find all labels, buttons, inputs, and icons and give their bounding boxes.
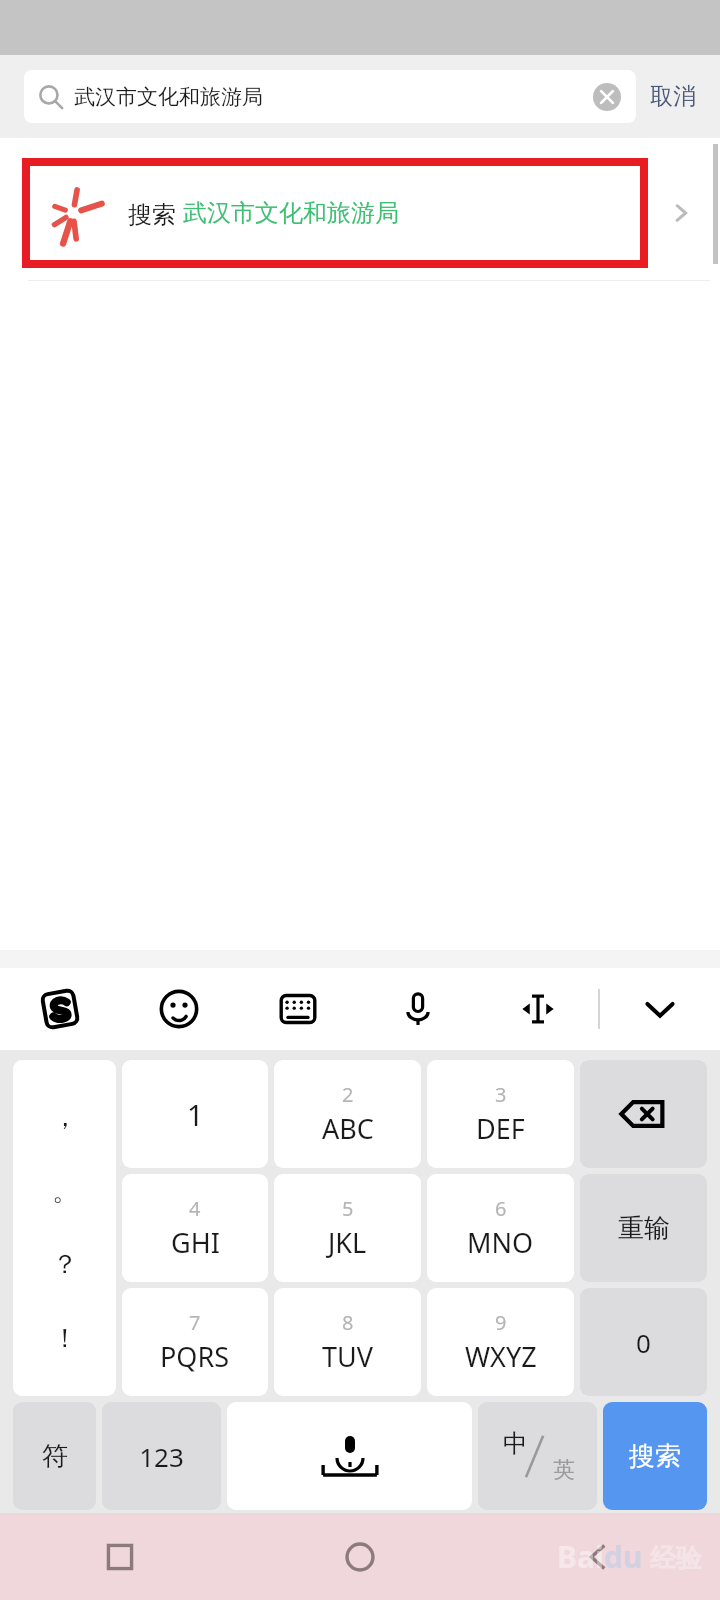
staticText: 5 — [342, 1195, 354, 1222]
staticText: DEF — [476, 1110, 525, 1147]
staticText: 。 — [52, 1175, 78, 1208]
button[interactable]: Back — [480, 1513, 720, 1600]
button[interactable]: 5 — [274, 1174, 421, 1282]
button[interactable]: 2 — [274, 1060, 421, 1168]
button[interactable]: Voice input — [358, 968, 478, 1050]
staticText: 3 — [495, 1081, 507, 1108]
staticText: 0 — [636, 1325, 651, 1360]
button[interactable]: 1 — [122, 1060, 268, 1168]
button[interactable]: 武汉市文化和旅游局 — [24, 70, 636, 123]
staticText: ！ — [52, 1322, 78, 1355]
staticText: 武汉市文化和旅游局 — [74, 84, 263, 110]
button[interactable]: Emoji — [119, 968, 238, 1050]
button[interactable]: 符 — [13, 1402, 96, 1510]
staticText: 8 — [342, 1309, 354, 1336]
staticText: GHI — [171, 1224, 220, 1261]
staticText: ？ — [52, 1248, 78, 1281]
staticText: 6 — [495, 1195, 507, 1222]
staticText: 中 — [503, 1428, 528, 1459]
staticText: TUV — [322, 1338, 373, 1375]
staticText: 英 — [553, 1456, 575, 1484]
staticText: 武汉市文化和旅游局 — [183, 198, 399, 228]
staticText: ABC — [322, 1110, 374, 1147]
staticText: 取消 — [650, 82, 696, 111]
button[interactable]: 7 — [122, 1288, 268, 1396]
staticText: Bai — [557, 1536, 604, 1577]
button[interactable]: 重输 — [580, 1174, 707, 1282]
staticText: 符 — [42, 1440, 68, 1473]
button[interactable]: 3 — [427, 1060, 574, 1168]
staticText: 1 — [187, 1095, 204, 1134]
button[interactable]: 搜索 — [0, 158, 720, 268]
button[interactable]: Delete — [580, 1060, 707, 1168]
button[interactable]: 搜索 — [603, 1402, 707, 1510]
staticText: 重输 — [618, 1212, 670, 1245]
staticText: 2 — [342, 1081, 354, 1108]
button[interactable]: Hide keyboard — [600, 968, 720, 1050]
button[interactable]: Keyboard layout — [238, 968, 358, 1050]
button[interactable]: ， — [13, 1060, 116, 1396]
button[interactable]: Move cursor — [478, 968, 598, 1050]
button[interactable]: 4 — [122, 1174, 268, 1282]
button[interactable]: 取消 — [650, 55, 696, 138]
staticText: JKL — [328, 1224, 367, 1261]
staticText: 7 — [189, 1309, 201, 1336]
button[interactable]: 0 — [580, 1288, 707, 1396]
button[interactable]: 8 — [274, 1288, 421, 1396]
staticText: 123 — [139, 1439, 184, 1474]
staticText: du — [604, 1536, 643, 1577]
staticText: 9 — [495, 1309, 507, 1336]
staticText: 经验 — [643, 1539, 702, 1575]
button[interactable]: 中 — [478, 1402, 597, 1510]
staticText: ， — [52, 1101, 78, 1134]
button[interactable]: 9 — [427, 1288, 574, 1396]
staticText: WXYZ — [465, 1338, 537, 1375]
button[interactable]: 6 — [427, 1174, 574, 1282]
staticText: 搜索 — [128, 197, 183, 230]
staticText: PQRS — [160, 1338, 230, 1375]
button[interactable]: Home — [240, 1513, 480, 1600]
staticText: 搜索 — [629, 1440, 681, 1473]
staticText: 4 — [189, 1195, 201, 1222]
button[interactable]: Space and voice — [227, 1402, 472, 1510]
button[interactable]: 123 — [102, 1402, 221, 1510]
staticText: MNO — [467, 1224, 534, 1261]
button[interactable]: Recents — [0, 1513, 240, 1600]
button[interactable]: Clear text — [592, 82, 622, 112]
button[interactable]: Sogou input — [0, 968, 119, 1050]
